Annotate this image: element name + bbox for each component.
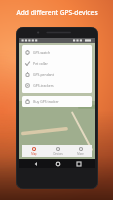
button[interactable]: More: [69, 145, 92, 157]
staticText: GPS-trackers: [33, 83, 54, 88]
button[interactable]: Map: [22, 145, 46, 157]
button[interactable]: GPS-watch: [22, 47, 92, 58]
staticText: Buy GPS tracker: [33, 99, 59, 104]
staticText: Pet collar: [33, 61, 48, 66]
staticText: Add different GPS-devices: [16, 8, 98, 17]
staticText: GPS-watch: [33, 50, 50, 55]
button[interactable]: GPS-trackers: [22, 80, 92, 91]
staticText: GPS-pendant: [33, 72, 54, 77]
staticText: More: [77, 152, 84, 156]
button[interactable]: Devices: [46, 145, 69, 157]
button[interactable]: Buy GPS tracker: [22, 96, 92, 107]
button[interactable]: Home: [53, 159, 62, 168]
button[interactable]: Pet collar: [22, 58, 92, 69]
staticText: Devices: [53, 152, 63, 156]
button[interactable]: Recents: [74, 159, 83, 168]
button[interactable]: GPS-pendant: [22, 69, 92, 80]
button[interactable]: Back: [31, 159, 40, 168]
staticText: Map: [31, 152, 37, 156]
